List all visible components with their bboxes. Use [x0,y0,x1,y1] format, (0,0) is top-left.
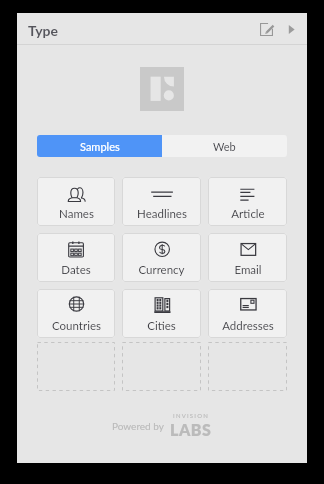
staticText: Email [234,263,262,277]
button[interactable]: Web [162,135,287,157]
button[interactable]: Names [37,177,115,226]
staticText: LABS [170,420,212,439]
staticText: Countries [52,319,101,333]
staticText: Powered by [112,420,164,432]
button[interactable]: Article [208,177,287,226]
staticText: Samples [80,140,120,153]
staticText: Cities [147,319,176,333]
staticText: Dates [61,263,91,277]
staticText: Headlines [137,207,187,221]
staticText: Names [59,207,94,221]
staticText: Addresses [222,319,274,333]
staticText: Currency [138,263,185,277]
button[interactable]: Headlines [122,177,201,226]
button[interactable]: Countries [37,289,115,338]
button[interactable]: Samples [37,135,162,157]
button[interactable]: Cities [122,289,201,338]
button[interactable]: Currency [122,233,201,282]
button[interactable]: Play [283,21,299,37]
button[interactable]: Email [208,233,287,282]
staticText: INVISION [173,412,209,419]
staticText: Article [231,207,265,221]
button[interactable]: Dates [37,233,115,282]
button[interactable]: Addresses [208,289,287,338]
button[interactable]: Edit [256,19,276,39]
staticText: Web [213,140,236,153]
staticText: Type [28,22,59,39]
